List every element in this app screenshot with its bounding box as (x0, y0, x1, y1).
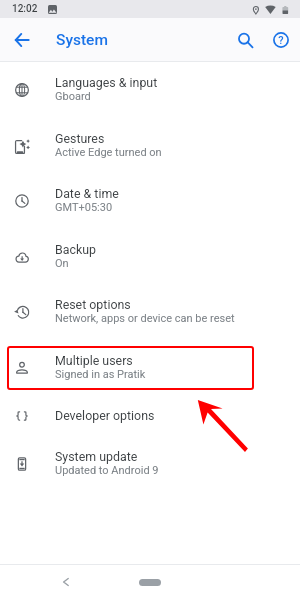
button[interactable]: System update (0, 436, 300, 492)
button[interactable]: Reset options (0, 284, 300, 340)
staticText: Reset options (55, 297, 131, 312)
staticText: Languages & input (55, 75, 158, 90)
staticText: Network, apps or device can be reset (55, 312, 235, 325)
staticText: Signed in as Pratik (55, 368, 146, 381)
staticText: On (55, 257, 69, 270)
button[interactable]: Languages & input (0, 62, 300, 118)
staticText: Active Edge turned on (55, 146, 162, 159)
staticText: Backup (55, 242, 97, 257)
staticText: System update (55, 449, 138, 464)
button[interactable]: Backup (0, 229, 300, 285)
staticText: 12:02 (12, 3, 38, 15)
staticText: Developer options (55, 408, 155, 423)
button[interactable]: Developer options (0, 395, 300, 436)
button[interactable]: Back (52, 569, 80, 597)
staticText: Updated to Android 9 (55, 464, 159, 477)
staticText: ? (278, 34, 284, 47)
button[interactable]: Help (267, 26, 295, 54)
staticText: Gestures (55, 131, 105, 146)
staticText: Date & time (55, 186, 119, 201)
button[interactable]: Search (231, 26, 259, 54)
staticText: GMT+05:30 (55, 201, 113, 214)
staticText: Multiple users (55, 353, 133, 368)
staticText: System (56, 31, 108, 49)
button[interactable]: Gestures (0, 118, 300, 174)
button[interactable]: Multiple users (0, 340, 300, 396)
staticText: Gboard (55, 90, 91, 103)
button[interactable]: Date & time (0, 173, 300, 229)
button[interactable]: Home (139, 579, 161, 586)
button[interactable]: Back (9, 27, 35, 53)
